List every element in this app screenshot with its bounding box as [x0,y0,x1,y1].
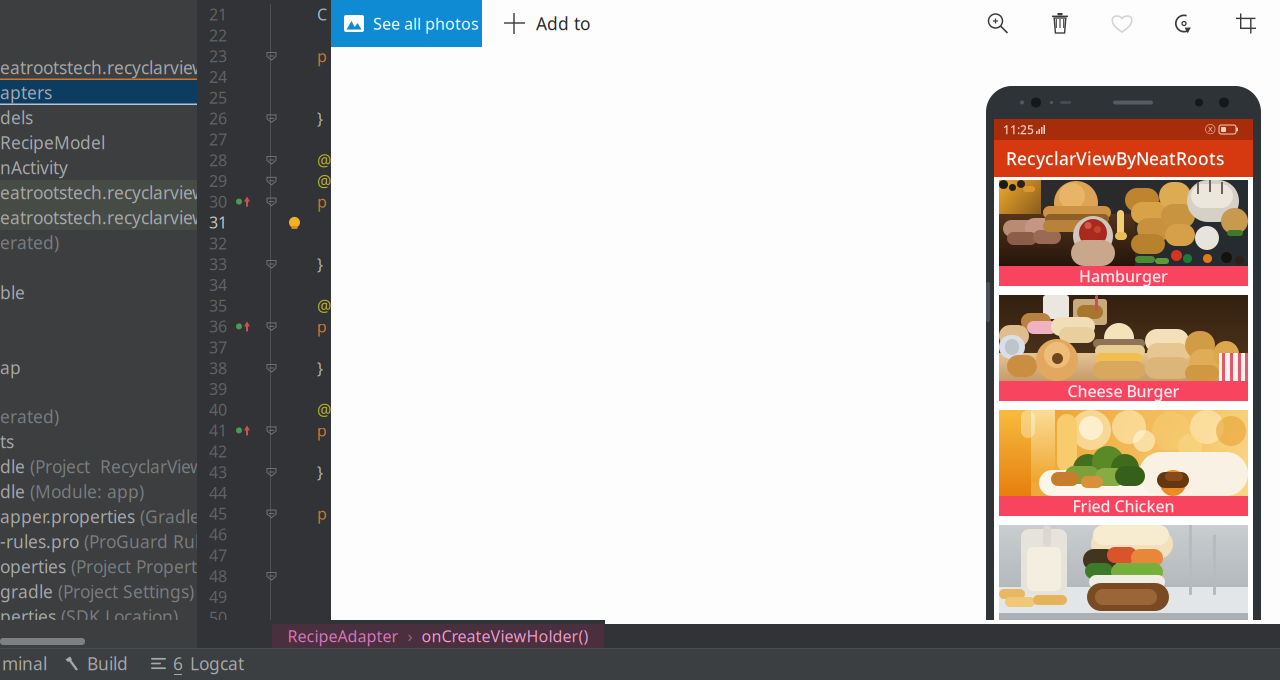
staticText: erated) [0,405,59,428]
staticText: (Project Properties [71,555,219,578]
staticText: 22 [209,25,227,46]
staticText: 38 [209,357,227,379]
button[interactable]: Zoom [967,0,1029,47]
staticText: 11:25 [1003,121,1034,137]
staticText: RecipeModel [0,131,105,154]
staticText: RecyclarViewByNeatRoots [1006,147,1224,170]
button[interactable]: Add to [482,0,606,47]
staticText: apper.properties [0,505,140,528]
staticText: 21 [209,4,227,25]
staticText: operties [0,555,71,578]
staticText: 36 [209,316,227,337]
staticText: } [317,461,323,483]
staticText: 37 [209,337,227,358]
staticText: 39 [209,378,227,399]
staticText: 29 [209,170,227,191]
staticText: 28 [209,149,227,171]
button[interactable]: Fried Chicken [994,410,1253,516]
staticText: 44 [209,482,227,503]
staticText: 45 [209,503,227,524]
staticText: 27 [209,129,227,150]
button[interactable]: Build [65,648,128,679]
staticText: See all photos [373,13,479,34]
button[interactable]: minal [0,648,47,679]
staticText: › [407,625,412,647]
staticText: dle [0,480,30,503]
staticText: 23 [209,45,227,67]
staticText: RecipeAdapter [287,625,398,647]
staticText: (Project RecyclarViewN [30,455,217,478]
button[interactable]: Favorite [1091,0,1153,47]
staticText: @ [317,149,331,171]
staticText: (Project Settings) [58,580,194,603]
staticText: 34 [209,274,227,295]
staticText: 26 [209,108,227,129]
staticText: dle [0,455,30,478]
staticText: p [317,316,327,337]
staticText: (ProGuard Rules [84,530,217,553]
staticText: eatrootstech.recyclarviewn [0,56,217,79]
staticText: 24 [209,66,227,87]
staticText: } [317,357,323,379]
staticText: erated) [0,231,59,254]
staticText: 47 [209,545,227,566]
button[interactable] [994,525,1253,620]
staticText: 46 [209,524,227,545]
staticText: Add to [536,12,590,35]
button[interactable]: Cheese Burger [994,295,1253,401]
staticText: p [317,191,327,212]
staticText: ts [0,430,14,453]
staticText: 33 [209,253,227,275]
staticText: p [317,503,327,524]
staticText: gradle [0,580,58,603]
staticText: -rules.pro [0,530,84,553]
staticText: Logcat [190,652,244,675]
button[interactable]: 6 [151,648,244,679]
staticText: 35 [209,295,227,316]
staticText: perties [0,605,61,628]
staticText: (SDK Location) [61,605,178,628]
staticText: eatrootstech.recyclarviewn [0,181,217,204]
staticText: nActivity [0,156,68,179]
staticText: @ [317,399,331,420]
staticText: 49 [209,586,227,607]
staticText: ble [0,281,25,304]
staticText: p [317,420,327,441]
staticText: onCreateViewHolder() [421,625,588,647]
button[interactable]: Crop [1215,0,1277,47]
staticText: } [317,108,323,129]
staticText: apters [0,81,52,104]
staticText: 40 [209,399,227,420]
staticText: minal [2,652,47,675]
staticText: 48 [209,565,227,587]
staticText: 32 [209,233,227,254]
staticText: Cheese Burger [1067,380,1179,402]
staticText: Build [87,652,128,675]
button[interactable]: Delete [1029,0,1091,47]
staticText: 43 [209,461,227,483]
staticText: 25 [209,87,227,108]
staticText: (Module: app) [30,480,144,503]
staticText: (Gradle V [140,505,215,528]
button[interactable]: Rotate [1153,0,1215,47]
staticText: } [317,253,323,275]
staticText: 42 [209,441,227,462]
staticText: 31 [209,212,227,233]
staticText: ⓧ [1205,123,1216,136]
staticText: dels [0,106,33,129]
staticText: Hamburger [1079,265,1168,287]
staticText: ap [0,356,21,379]
button[interactable]: See all photos [331,0,482,47]
staticText: @ [317,295,331,316]
staticText: 6 [173,652,183,675]
staticText: @ [317,170,331,191]
staticText: 30 [209,191,227,212]
staticText: Fried Chicken [1072,495,1174,517]
staticText: C [317,4,327,25]
staticText: eatrootstech.recyclarviewn [0,206,217,229]
staticText: 50 [209,607,227,628]
button[interactable]: Hamburger [994,180,1253,286]
staticText: p [317,45,327,67]
staticText: 41 [209,420,227,441]
